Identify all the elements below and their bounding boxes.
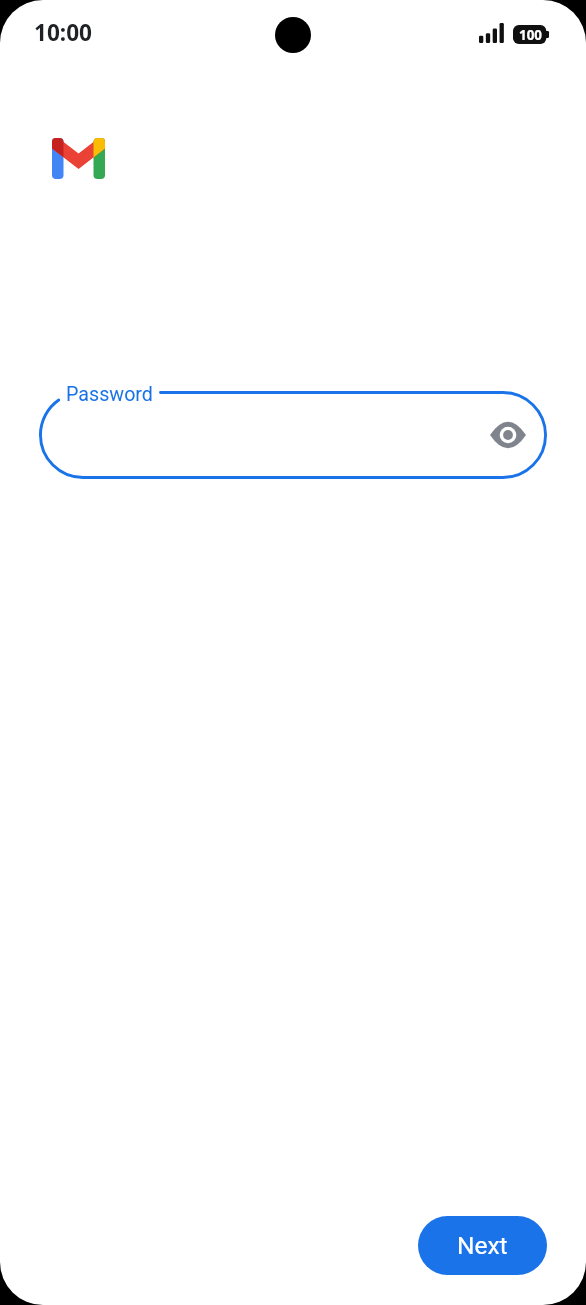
button[interactable]: Password bbox=[39, 391, 547, 479]
staticText: 10:00 bbox=[34, 17, 93, 48]
staticText: Password bbox=[66, 383, 153, 406]
button[interactable]: Next bbox=[418, 1216, 547, 1275]
button[interactable]: Show password bbox=[483, 410, 533, 460]
staticText: Next bbox=[457, 1231, 508, 1260]
staticText: 100 bbox=[519, 26, 542, 44]
